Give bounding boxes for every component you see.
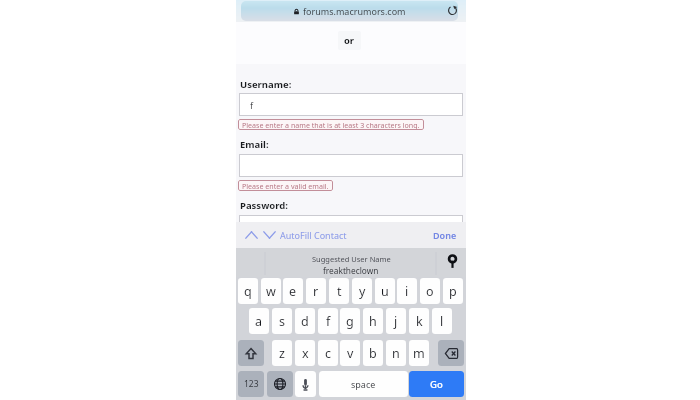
button[interactable]: Passwords — [444, 254, 460, 270]
staticText: h — [369, 313, 377, 330]
button[interactable]: z — [272, 340, 292, 366]
staticText: space — [351, 378, 376, 390]
staticText: l — [440, 313, 444, 330]
staticText: Password: — [240, 199, 288, 212]
staticText: m — [413, 345, 425, 362]
staticText: k — [416, 313, 423, 330]
staticText: Go — [430, 378, 443, 391]
staticText: o — [426, 283, 434, 300]
button[interactable]: f — [318, 308, 338, 334]
staticText: r — [313, 283, 319, 300]
button[interactable]: l — [432, 308, 452, 334]
button[interactable]: g — [340, 308, 360, 334]
staticText: forums.macrumors.com — [303, 5, 406, 17]
staticText: x — [302, 345, 309, 362]
button[interactable]: Previous field — [243, 227, 259, 243]
button[interactable]: Next keyboard — [267, 371, 293, 397]
button[interactable]: y — [352, 278, 372, 304]
button[interactable]: u — [375, 278, 395, 304]
staticText: j — [394, 313, 398, 330]
staticText: d — [301, 313, 309, 330]
button[interactable]: forums.macrumors.com — [241, 1, 458, 21]
button[interactable] — [239, 154, 463, 177]
button[interactable]: j — [386, 308, 406, 334]
staticText: Username: — [240, 78, 292, 91]
staticText: p — [449, 283, 457, 300]
staticText: z — [279, 345, 285, 362]
button[interactable]: t — [329, 278, 349, 304]
staticText: AutoFill Contact — [280, 229, 347, 241]
staticText: g — [346, 313, 354, 330]
staticText: w — [266, 283, 276, 300]
button[interactable]: k — [409, 308, 429, 334]
staticText: Done — [433, 229, 457, 241]
staticText: a — [255, 313, 263, 330]
staticText: v — [347, 345, 354, 362]
button[interactable]: Next field — [261, 227, 277, 243]
staticText: b — [369, 345, 377, 362]
staticText: c — [325, 345, 332, 362]
button[interactable]: Dictation — [295, 371, 316, 397]
button[interactable]: Go — [409, 371, 464, 397]
staticText: Suggested User Name — [312, 254, 391, 264]
staticText: n — [392, 345, 400, 362]
staticText: i — [405, 283, 409, 300]
button[interactable]: Reload — [445, 3, 460, 18]
staticText: freaktheclown — [323, 265, 379, 276]
staticText: Please enter a valid email. — [242, 181, 329, 191]
button[interactable]: f — [239, 93, 463, 116]
staticText: e — [289, 283, 297, 300]
staticText: u — [381, 283, 389, 300]
staticText: q — [244, 283, 252, 300]
staticText: Please enter a name that is at least 3 c… — [242, 120, 420, 130]
staticText: y — [359, 283, 366, 300]
staticText: s — [279, 313, 285, 330]
staticText: t — [337, 283, 342, 300]
button[interactable]: Shift — [238, 340, 264, 366]
button[interactable]: c — [318, 340, 338, 366]
button[interactable]: a — [249, 308, 269, 334]
button[interactable]: AutoFill Contact — [280, 229, 347, 241]
staticText: 123 — [244, 378, 259, 390]
button[interactable]: Done — [433, 229, 457, 241]
button[interactable]: d — [295, 308, 315, 334]
button[interactable]: p — [443, 278, 463, 304]
button[interactable]: v — [340, 340, 360, 366]
button[interactable]: m — [409, 340, 429, 366]
button[interactable]: o — [420, 278, 440, 304]
staticText: f — [250, 99, 254, 111]
button[interactable]: 123 — [238, 371, 264, 397]
button[interactable]: Backspace — [438, 340, 464, 366]
staticText: Email: — [240, 138, 269, 151]
button[interactable]: r — [306, 278, 326, 304]
button[interactable]: n — [386, 340, 406, 366]
staticText: f — [326, 313, 331, 330]
button[interactable]: i — [397, 278, 417, 304]
button[interactable]: space — [319, 371, 408, 397]
button[interactable]: s — [272, 308, 292, 334]
button[interactable]: e — [283, 278, 303, 304]
button[interactable]: w — [261, 278, 281, 304]
button[interactable]: q — [238, 278, 258, 304]
button[interactable]: b — [363, 340, 383, 366]
button[interactable]: h — [363, 308, 383, 334]
staticText: or — [344, 34, 355, 47]
button[interactable]: x — [295, 340, 315, 366]
